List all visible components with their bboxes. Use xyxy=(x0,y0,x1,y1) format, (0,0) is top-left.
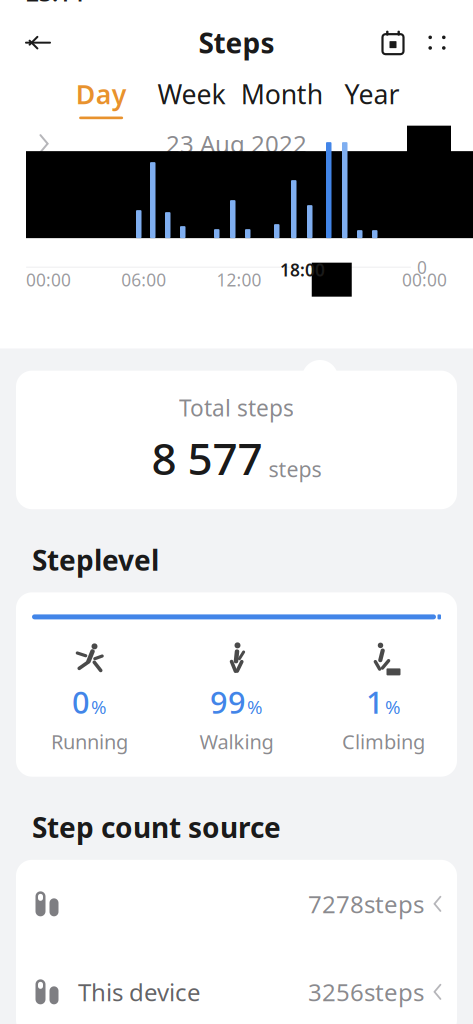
staticText: 99 xyxy=(210,681,246,722)
button[interactable]: Calendar xyxy=(371,21,415,65)
staticText: Month xyxy=(241,76,323,112)
staticText: Week xyxy=(157,76,225,112)
staticText: 00:00 xyxy=(26,268,71,291)
staticText: Walking xyxy=(199,728,273,755)
staticText: 8 577 xyxy=(151,429,262,487)
staticText: 23 Aug 2022 xyxy=(166,128,307,160)
staticText: This device xyxy=(78,976,201,1008)
staticText: 18:00 xyxy=(280,258,325,281)
staticText: Steps xyxy=(198,24,274,61)
staticText: 00:00 xyxy=(402,268,447,291)
staticText: 23:14 xyxy=(26,0,84,8)
button[interactable]: Day xyxy=(56,70,146,125)
staticText: 0 xyxy=(417,256,427,279)
button[interactable] xyxy=(16,860,457,948)
staticText: 12:00 xyxy=(216,268,261,291)
button[interactable]: Previous day xyxy=(22,126,66,162)
staticText: Running xyxy=(51,728,128,755)
staticText: Year xyxy=(344,76,399,112)
button[interactable]: This device xyxy=(16,948,457,1024)
staticText: Step count source xyxy=(32,809,281,846)
staticText: % xyxy=(247,694,263,719)
staticText: Steplevel xyxy=(32,541,159,578)
button[interactable]: Week xyxy=(146,70,236,125)
staticText: Day xyxy=(76,76,127,112)
staticText: 0 xyxy=(72,681,90,722)
button[interactable]: More options xyxy=(415,21,459,65)
staticText: % xyxy=(91,694,107,719)
button[interactable]: Back xyxy=(14,19,62,67)
staticText: 1 xyxy=(366,681,384,722)
staticText: 7278steps xyxy=(308,888,424,920)
staticText: Total steps xyxy=(179,393,294,423)
button[interactable]: Month xyxy=(236,70,327,125)
staticText: % xyxy=(385,694,401,719)
button[interactable]: Year xyxy=(327,70,417,125)
staticText: steps xyxy=(268,455,321,483)
staticText: Climbing xyxy=(342,728,425,755)
staticText: 3256steps xyxy=(308,976,424,1008)
staticText: 06:00 xyxy=(121,268,166,291)
